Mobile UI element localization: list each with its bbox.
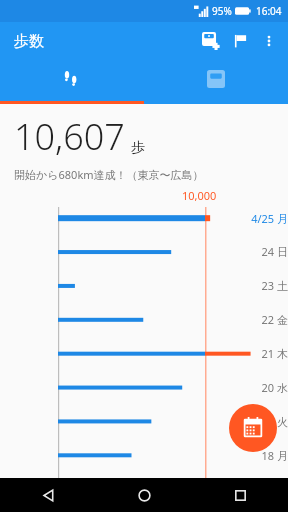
staticText: 23 土 [237, 278, 288, 293]
staticText: 開始から680km達成！（東京〜広島） [14, 167, 204, 182]
button[interactable]: 23 土 [0, 274, 288, 308]
button[interactable]: Calendar [229, 404, 277, 452]
button[interactable]: 20 水 [0, 376, 288, 410]
button[interactable]: Home [96, 478, 192, 512]
button[interactable]: Weight tab [144, 60, 288, 104]
staticText: 21 木 [237, 346, 288, 361]
button[interactable]: More options [256, 28, 282, 54]
button[interactable]: 18 月 [0, 444, 288, 478]
staticText: 24 日 [237, 244, 288, 259]
staticText: 20 水 [237, 380, 288, 395]
button[interactable]: 24 日 [0, 240, 288, 274]
staticText: 4/25 月 [237, 211, 288, 226]
button[interactable]: Back [0, 478, 96, 512]
staticText: 22 金 [237, 312, 288, 327]
staticText: 歩数 [14, 32, 44, 51]
button[interactable]: Add weight [196, 26, 226, 56]
button[interactable]: Goal [226, 26, 256, 56]
staticText: 10,607 [14, 112, 125, 161]
staticText: 18 月 [237, 448, 288, 463]
staticText: 10,000 [182, 188, 217, 203]
button[interactable]: 4/25 月 [0, 207, 288, 240]
staticText: 19 火 [237, 414, 288, 429]
button[interactable]: 21 木 [0, 342, 288, 376]
button[interactable]: Steps tab [0, 60, 144, 104]
staticText: 歩 [131, 139, 145, 157]
staticText: 95% [212, 4, 232, 18]
button[interactable]: 22 金 [0, 308, 288, 342]
button[interactable]: Recent apps [192, 478, 288, 512]
staticText: 16:04 [256, 4, 282, 18]
button[interactable]: 19 火 [0, 410, 288, 444]
